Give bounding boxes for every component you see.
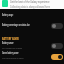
staticText: Turn off when fully charged bbox=[2, 46, 22, 49]
button[interactable]: Battery saver toggle bbox=[51, 42, 63, 50]
staticText: Get the best of the Galaxy experience bbox=[10, 0, 50, 4]
button[interactable] bbox=[0, 50, 64, 59]
button[interactable]: Battery percentage toggle bbox=[51, 22, 63, 30]
staticText: BATTERY SAVER bbox=[2, 37, 19, 41]
staticText: Battery percentage on status bar bbox=[2, 23, 30, 27]
button[interactable]: Game battery saver toggle bbox=[51, 53, 63, 61]
button[interactable] bbox=[0, 22, 64, 31]
staticText: Limit performance in games bbox=[2, 56, 24, 59]
staticText: Collecting data is always allowed here bbox=[10, 5, 51, 9]
staticText: Battery saver bbox=[2, 41, 14, 45]
staticText: Game battery saver bbox=[2, 51, 19, 55]
staticText: Battery usage bbox=[2, 13, 14, 17]
button[interactable] bbox=[0, 40, 64, 49]
button[interactable]: Get the best of the Galaxy experience bbox=[0, 0, 64, 9]
button[interactable] bbox=[0, 12, 64, 20]
